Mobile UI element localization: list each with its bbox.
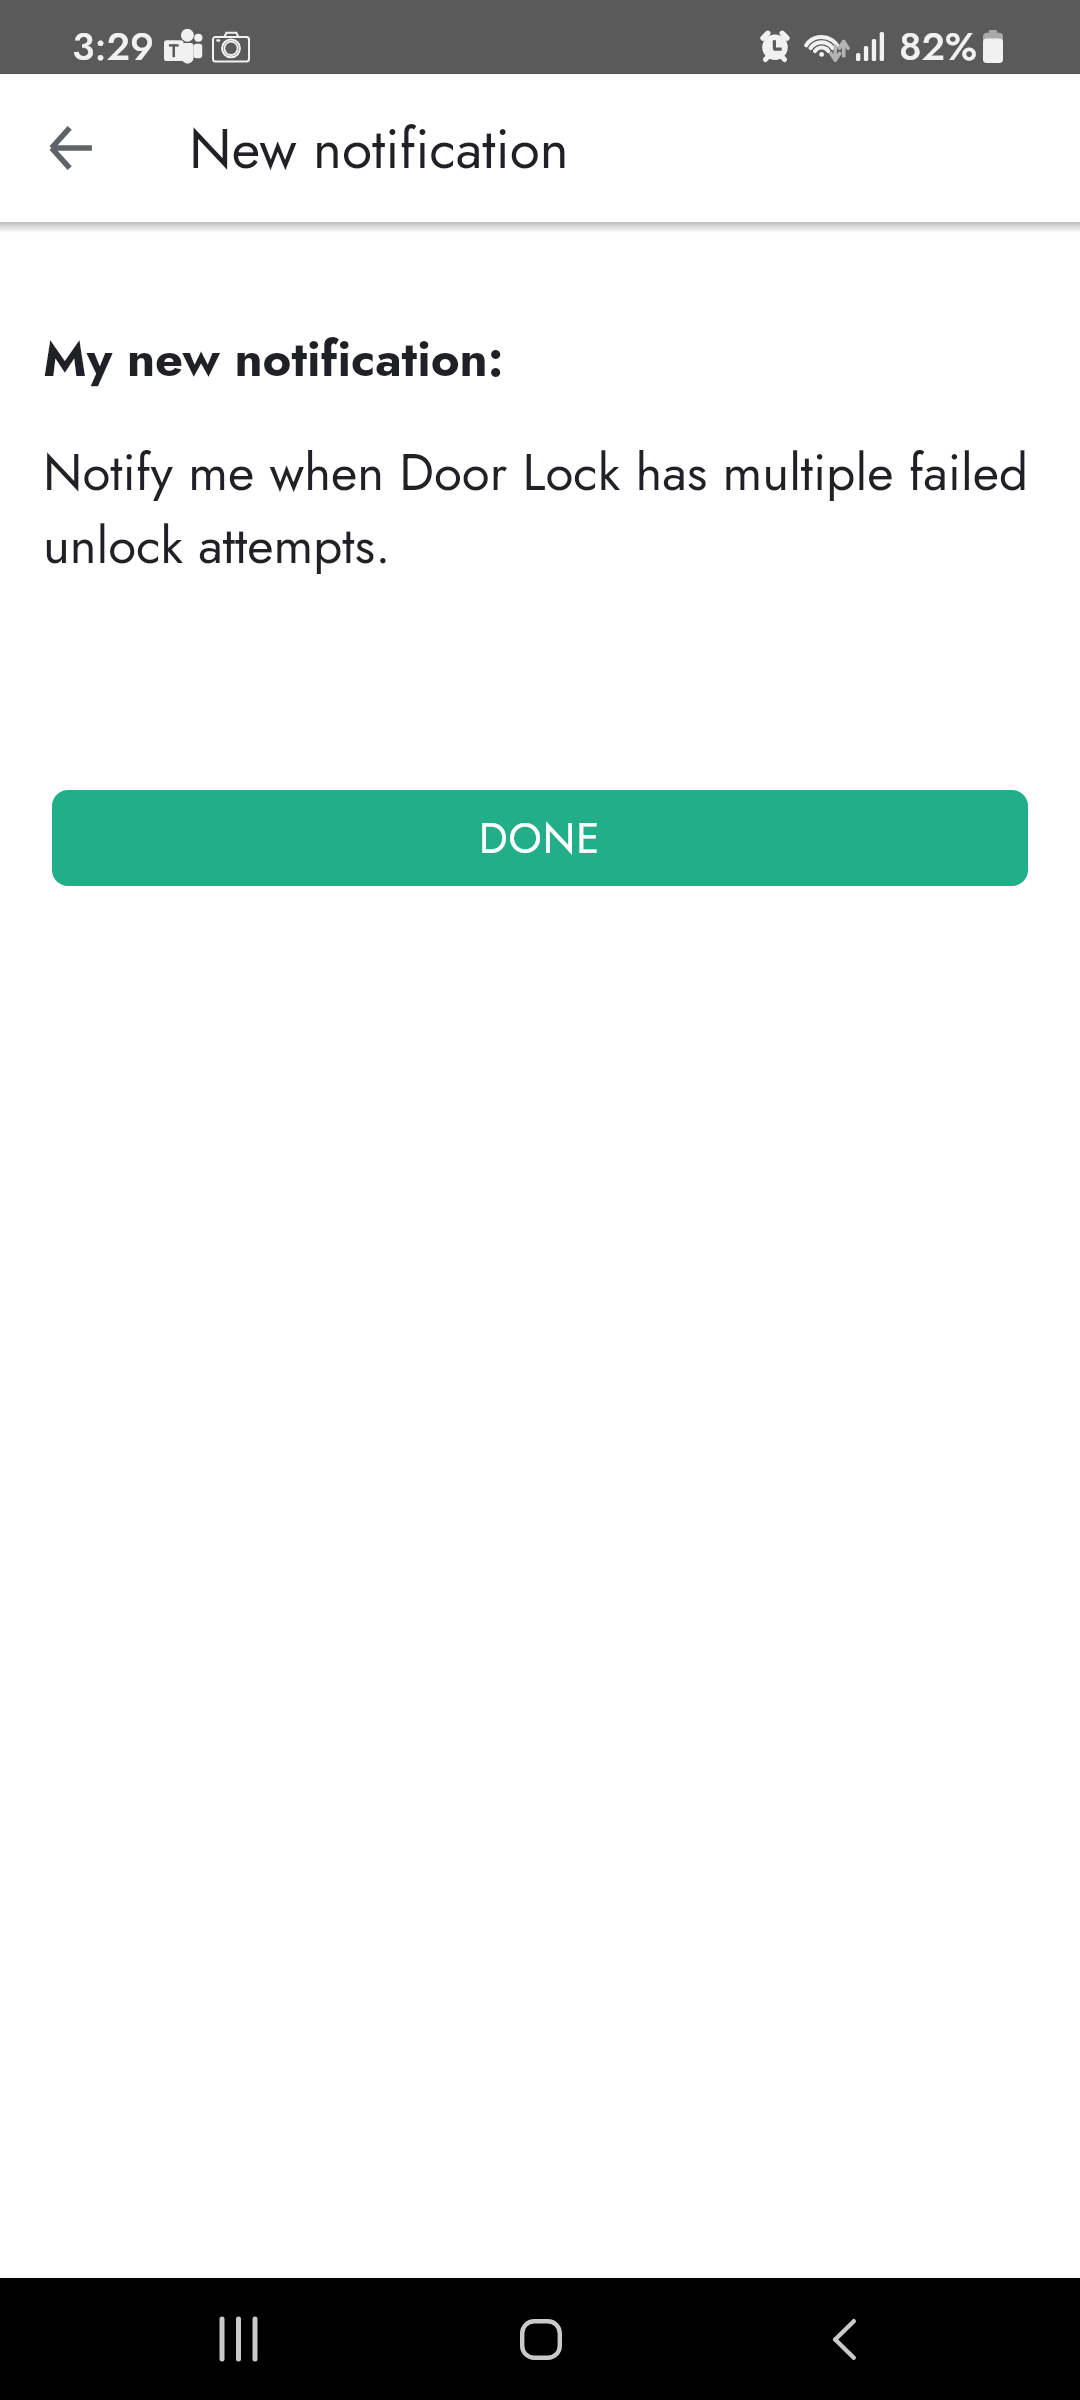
staticText: Notify me when Door Lock has multiple fa… — [43, 435, 1063, 582]
staticText: DONE — [479, 808, 601, 869]
button[interactable]: Home — [461, 2278, 621, 2400]
button[interactable]: Navigate up — [13, 90, 129, 206]
staticText: New notification — [189, 109, 569, 188]
button[interactable]: Recent apps — [159, 2278, 319, 2400]
staticText: 82% — [899, 18, 978, 74]
button[interactable]: Back — [764, 2278, 924, 2400]
button[interactable]: DONE — [52, 790, 1028, 886]
staticText: My new notification: — [43, 324, 504, 395]
staticText: 3:29 — [72, 18, 154, 74]
